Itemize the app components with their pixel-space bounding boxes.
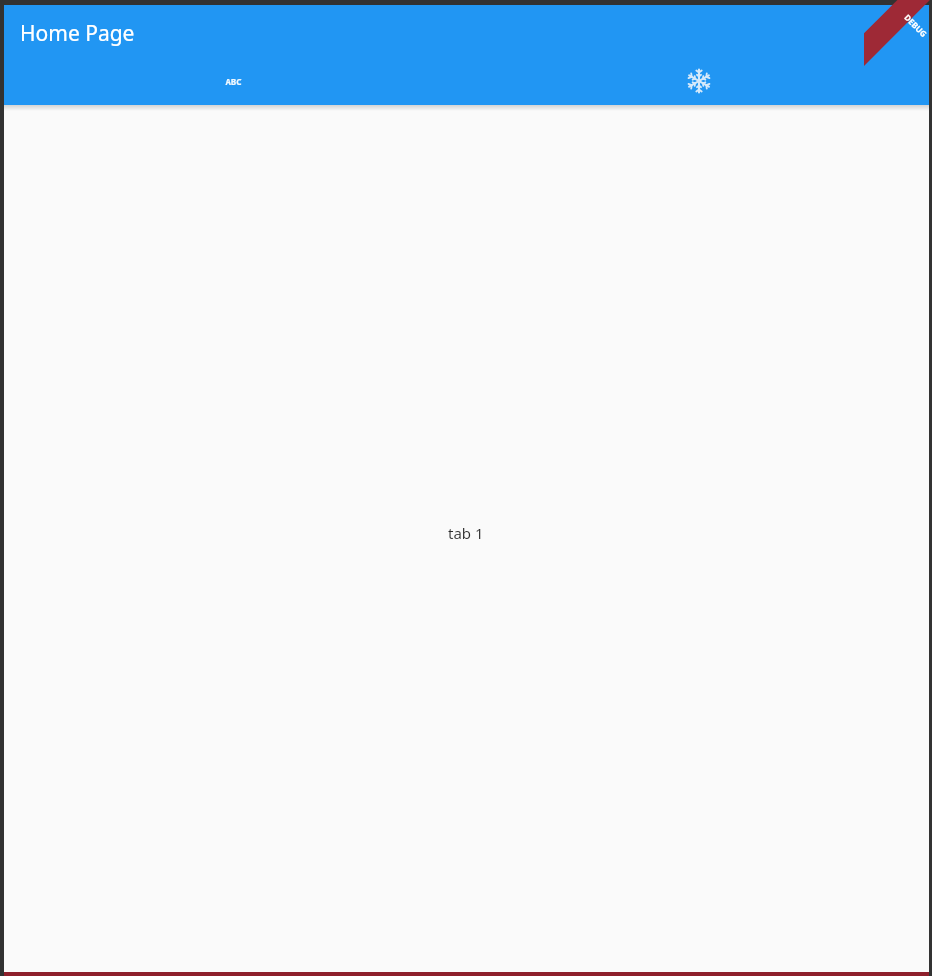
button[interactable]: ABC <box>0 57 466 105</box>
staticText: tab 1 <box>448 523 484 543</box>
staticText: ABC <box>225 75 242 87</box>
staticText: Home Page <box>20 19 135 48</box>
staticText: DEBUG <box>902 12 930 39</box>
button[interactable]: Snowflake tab <box>466 57 932 105</box>
